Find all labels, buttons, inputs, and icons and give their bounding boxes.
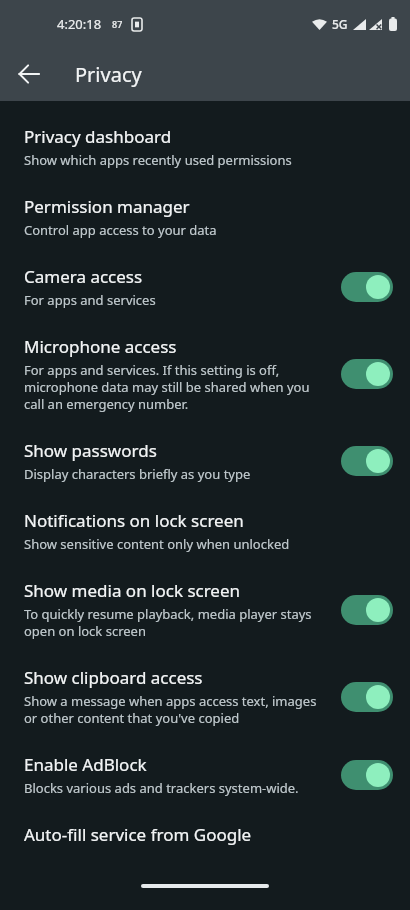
staticText: Control app access to your data bbox=[24, 221, 217, 239]
button[interactable]: Toggle setting bbox=[341, 359, 393, 389]
staticText: Show passwords bbox=[24, 439, 157, 462]
button[interactable]: Back bbox=[6, 51, 52, 97]
staticText: Show media on lock screen bbox=[24, 579, 241, 602]
staticText: Permission manager bbox=[24, 195, 190, 218]
staticText: Show clipboard access bbox=[24, 666, 203, 689]
staticText: For apps and services. If this setting i… bbox=[24, 361, 329, 413]
staticText: To quickly resume playback, media player… bbox=[24, 605, 329, 640]
staticText: Microphone access bbox=[24, 335, 177, 358]
button[interactable]: Enable AdBlock bbox=[0, 740, 410, 810]
staticText: Show sensitive content only when unlocke… bbox=[24, 535, 290, 553]
button[interactable]: Toggle setting bbox=[341, 760, 393, 790]
staticText: For apps and services bbox=[24, 291, 156, 309]
staticText: Enable AdBlock bbox=[24, 753, 147, 776]
staticText: Notifications on lock screen bbox=[24, 509, 244, 532]
staticText: 4:20:18 bbox=[57, 15, 102, 33]
staticText: Display characters briefly as you type bbox=[24, 465, 251, 483]
button[interactable]: Toggle setting bbox=[341, 682, 393, 712]
button[interactable]: Toggle setting bbox=[341, 272, 393, 302]
button[interactable]: Toggle setting bbox=[341, 446, 393, 476]
staticText: Blocks various ads and trackers system-w… bbox=[24, 779, 299, 797]
button[interactable]: Permission manager bbox=[0, 182, 410, 252]
button[interactable]: Show media on lock screen bbox=[0, 566, 410, 653]
button[interactable]: Auto-fill service from Google bbox=[0, 810, 410, 859]
button[interactable]: Camera access bbox=[0, 252, 410, 322]
button[interactable]: Privacy dashboard bbox=[0, 112, 410, 182]
staticText: 87 bbox=[112, 18, 123, 30]
staticText: Auto-fill service from Google bbox=[24, 823, 252, 846]
staticText: Privacy bbox=[75, 61, 142, 88]
button[interactable]: Microphone access bbox=[0, 322, 410, 426]
button[interactable]: Show passwords bbox=[0, 426, 410, 496]
staticText: Show a message when apps access text, im… bbox=[24, 692, 329, 727]
button[interactable]: Notifications on lock screen bbox=[0, 496, 410, 566]
button[interactable]: Toggle setting bbox=[341, 595, 393, 625]
staticText: Camera access bbox=[24, 265, 143, 288]
staticText: Privacy dashboard bbox=[24, 125, 172, 148]
staticText: 5G bbox=[332, 16, 348, 32]
button[interactable]: Show clipboard access bbox=[0, 653, 410, 740]
staticText: Show which apps recently used permission… bbox=[24, 151, 292, 169]
